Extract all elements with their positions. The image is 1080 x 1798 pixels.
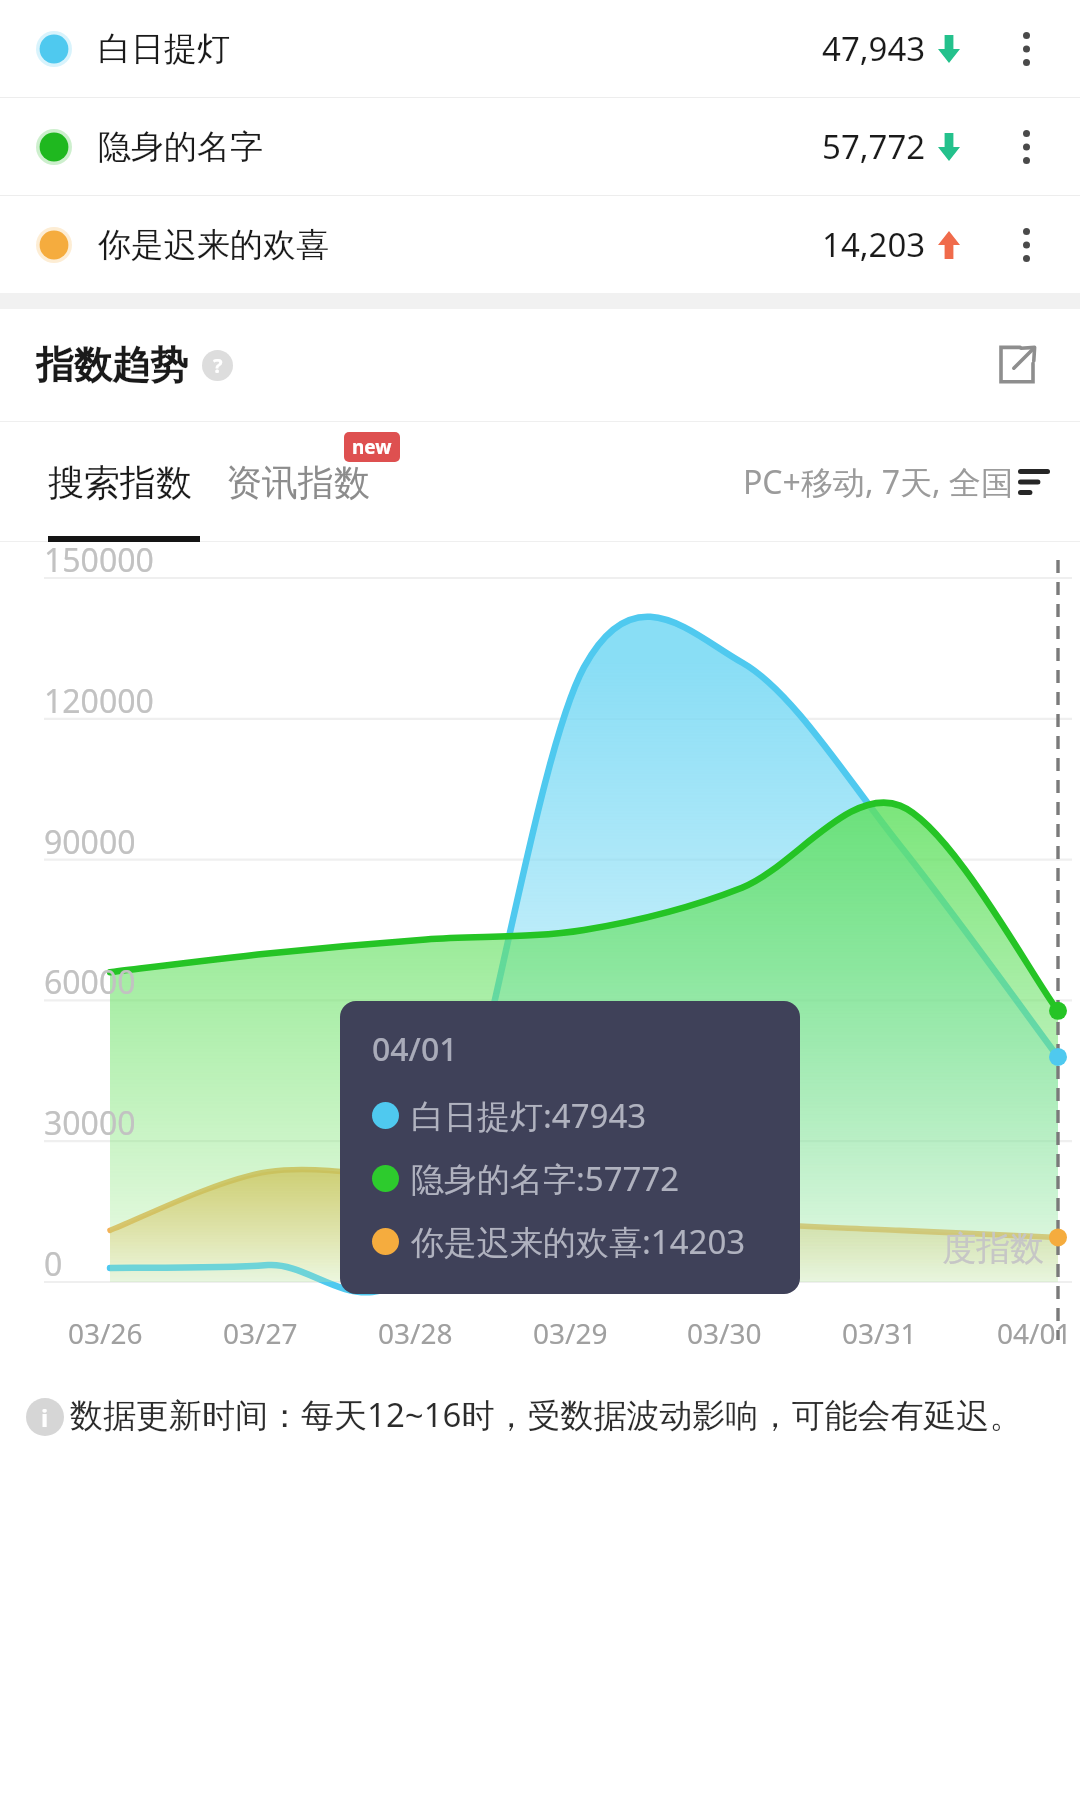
staticText: 90000 [44, 820, 136, 864]
staticText: 隐身的名字 [98, 126, 263, 168]
button[interactable]: 搜索指数 [48, 460, 192, 505]
staticText: 03/30 [687, 1314, 762, 1352]
staticText: 14,203 [822, 222, 926, 267]
button[interactable]: 资讯指数 [226, 460, 370, 505]
staticText: 04/01 [372, 1027, 458, 1071]
staticText: 120000 [44, 679, 154, 723]
button[interactable]: More options [1000, 219, 1052, 271]
button[interactable]: 隐身的名字 [0, 98, 1080, 195]
staticText: 你是迟来的欢喜:14203 [411, 1219, 746, 1264]
staticText: 57,772 [822, 124, 926, 169]
button[interactable]: Help [202, 350, 233, 381]
staticText: 搜索指数 [48, 460, 192, 505]
staticText: 60000 [44, 960, 136, 1004]
staticText: 隐身的名字:57772 [411, 1156, 680, 1201]
staticText: 数据更新时间：每天12~16时，受数据波动影响，可能会有延迟。 [70, 1392, 1023, 1437]
staticText: 03/28 [378, 1314, 453, 1352]
staticText: new [352, 434, 392, 460]
button[interactable]: Open in new window [990, 338, 1044, 392]
staticText: 03/31 [842, 1314, 917, 1352]
button[interactable]: More options [1000, 23, 1052, 75]
staticText: i [41, 1401, 49, 1434]
staticText: 你是迟来的欢喜 [98, 224, 329, 266]
staticText: 白日提灯 [98, 28, 230, 70]
staticText: 指数趋势 [36, 341, 188, 389]
staticText: 03/27 [223, 1314, 298, 1352]
staticText: 04/01 [997, 1314, 1072, 1352]
staticText: ? [213, 352, 223, 379]
staticText: 03/26 [68, 1314, 143, 1352]
staticText: 资讯指数 [226, 460, 370, 505]
staticText: PC+移动, 7天, 全国 [743, 460, 1013, 504]
button[interactable]: 你是迟来的欢喜 [0, 196, 1080, 293]
staticText: 白日提灯:47943 [411, 1093, 647, 1138]
button[interactable]: More options [1000, 121, 1052, 173]
button[interactable]: 白日提灯 [0, 0, 1080, 97]
staticText: 47,943 [822, 26, 926, 71]
staticText: 度指数 [942, 1227, 1044, 1270]
staticText: 03/29 [533, 1314, 608, 1352]
button[interactable]: PC+移动, 7天, 全国 [743, 460, 1050, 504]
staticText: 30000 [44, 1101, 136, 1145]
staticText: 150000 [44, 538, 154, 582]
staticText: 0 [44, 1242, 63, 1286]
